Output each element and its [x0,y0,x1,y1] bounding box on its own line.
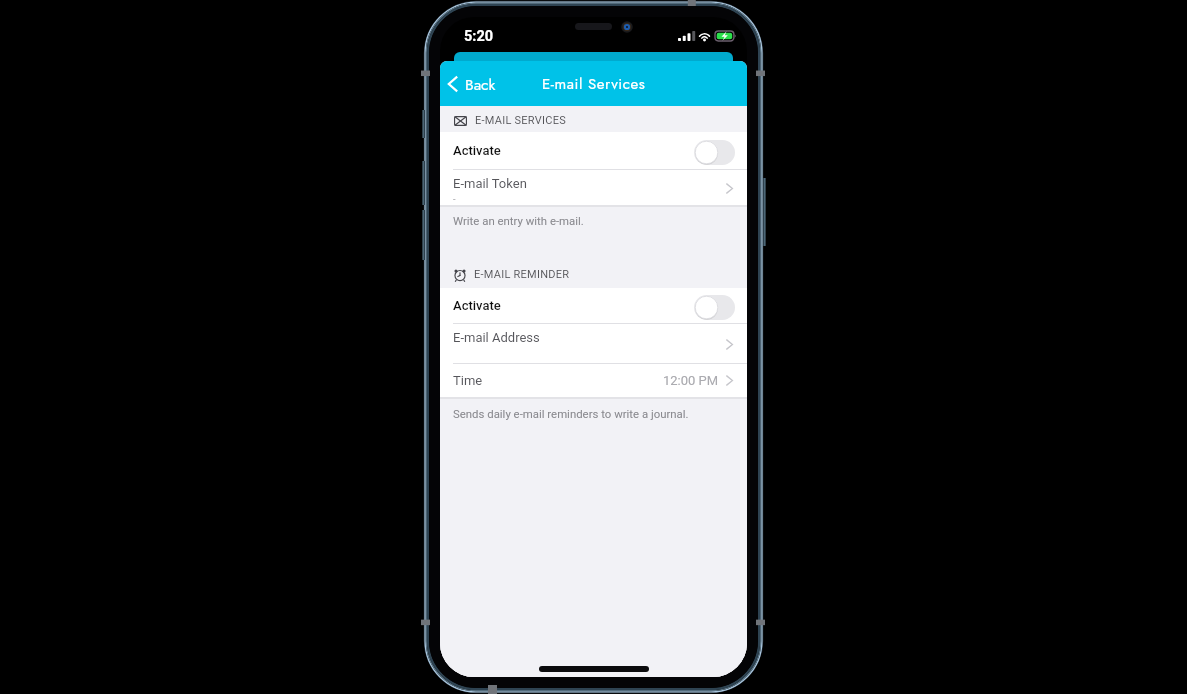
staticText: - [453,194,456,205]
staticText: Write an entry with e-mail. [453,214,584,227]
staticText: E-mail Services [542,73,646,95]
staticText: E-mail Token [453,176,527,191]
button[interactable]: Activate [440,132,747,169]
button[interactable]: E-mail Token [440,170,747,205]
staticText: E-MAIL REMINDER [474,268,570,281]
other: Toggle activate [694,140,735,165]
other: Toggle activate [694,295,735,320]
staticText: E-mail Address [453,330,540,345]
staticText: 12:00 PM [663,373,719,388]
staticText: E-MAIL SERVICES [475,114,566,127]
staticText: Activate [453,143,501,158]
button[interactable]: Back [440,61,506,106]
staticText: Activate [453,298,501,313]
button[interactable]: Activate [440,288,747,323]
button[interactable]: E-mail Address [440,324,747,363]
staticText: Sends daily e-mail reminders to write a … [453,407,689,420]
staticText: Time [453,373,483,388]
button[interactable]: Time [440,364,747,397]
staticText: 5:20 [464,28,494,45]
staticText: Back [465,73,496,95]
